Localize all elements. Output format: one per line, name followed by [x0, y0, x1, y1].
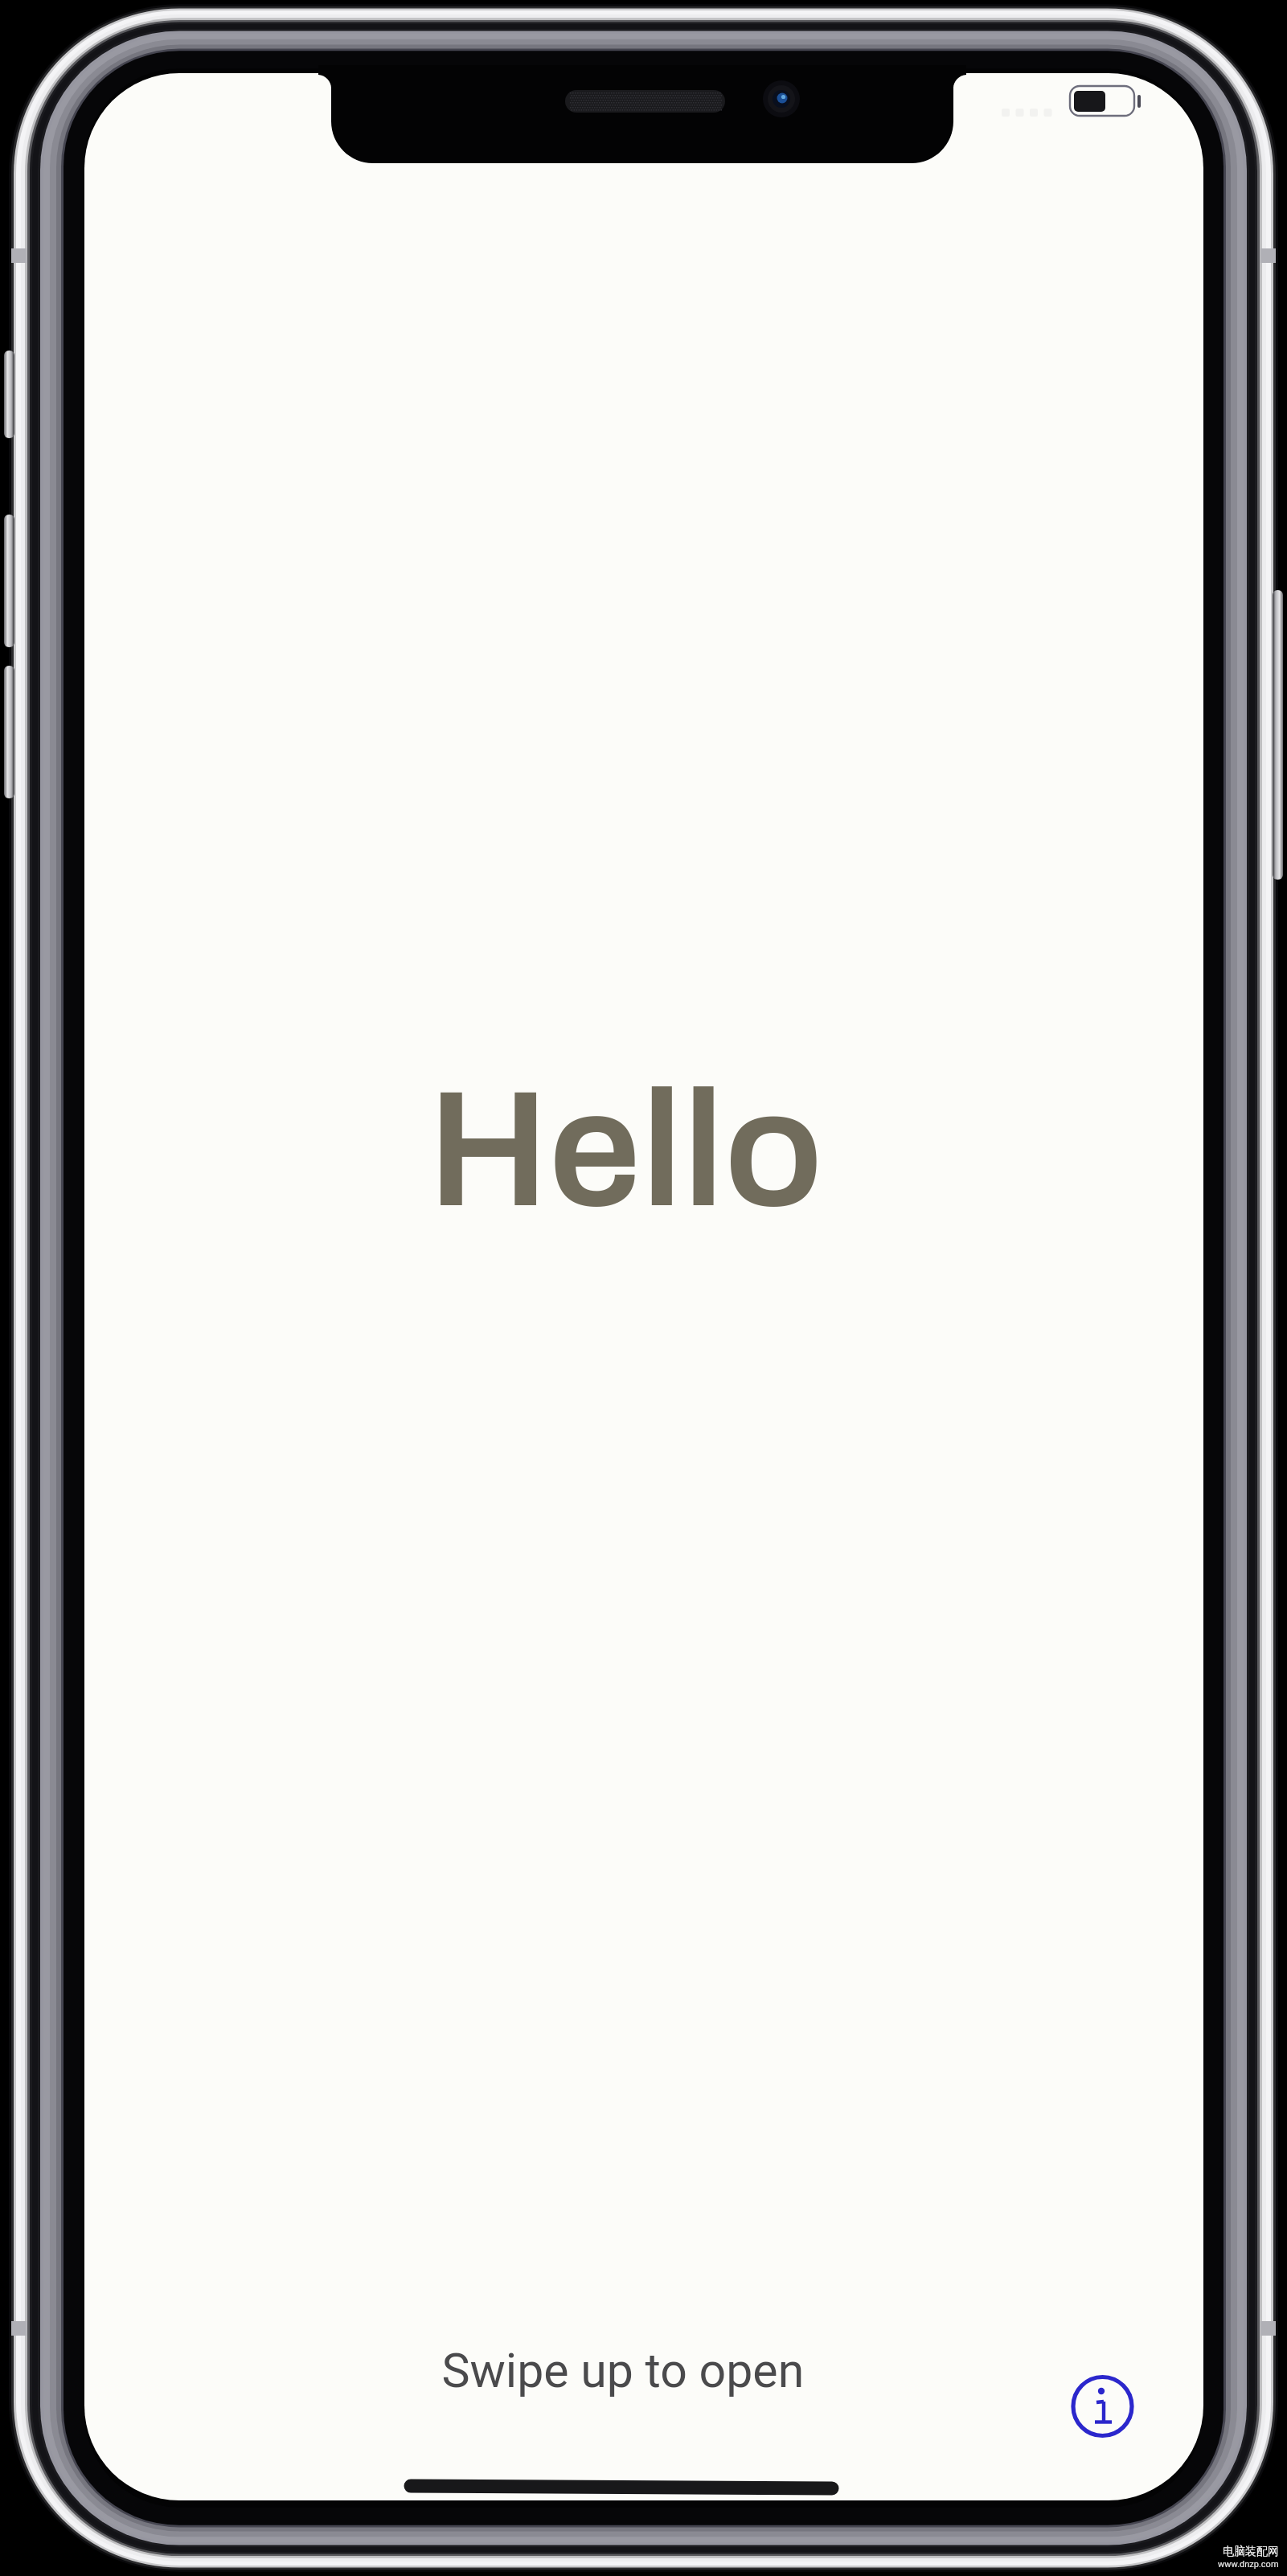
button[interactable]: Volume up — [0, 510, 24, 653]
button[interactable]: About this iPhone — [1066, 2370, 1140, 2444]
button[interactable]: Home indicator — [378, 2454, 868, 2500]
button[interactable]: Side button — [1263, 585, 1287, 884]
button[interactable]: Volume down — [0, 661, 24, 804]
button[interactable]: Ring/Silent switch — [0, 346, 24, 444]
button[interactable]: Swipe up to open — [338, 2332, 916, 2492]
